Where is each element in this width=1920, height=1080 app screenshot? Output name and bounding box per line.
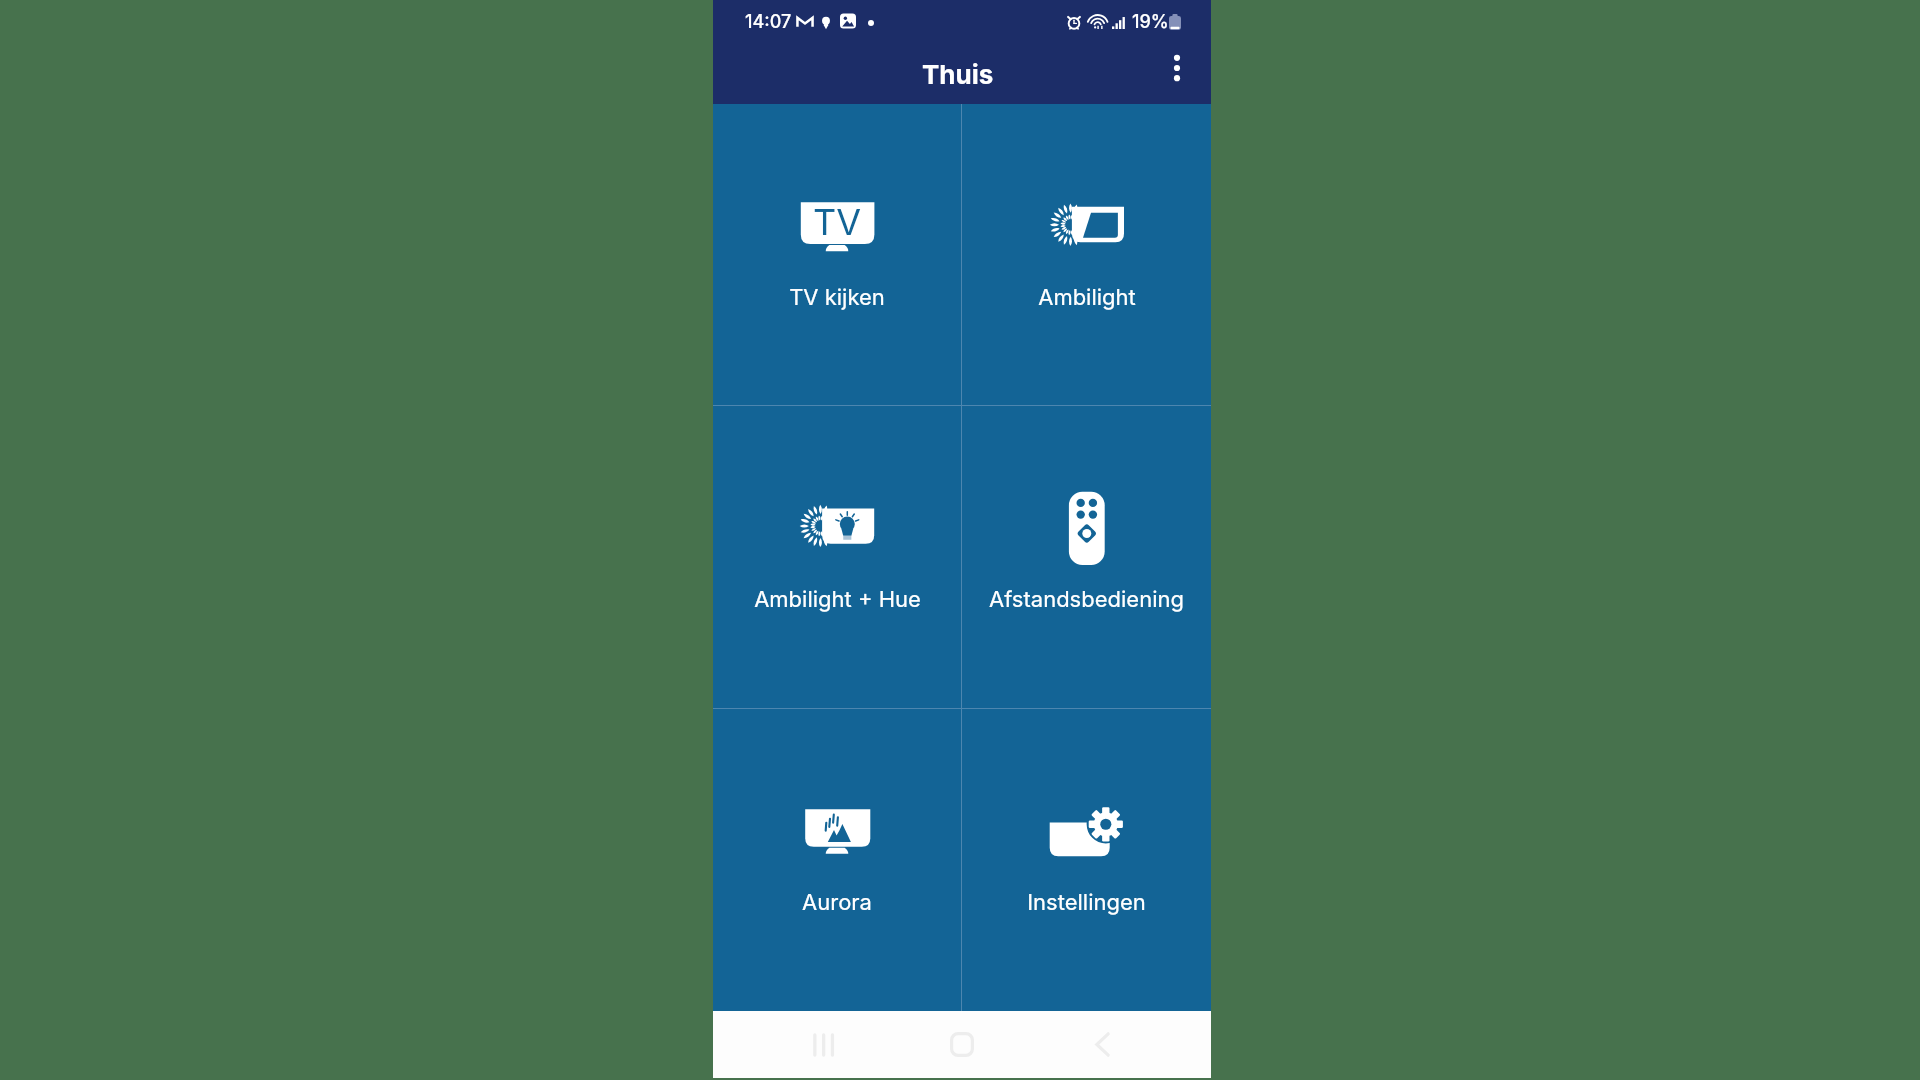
- staticText: Afstandsbediening: [989, 586, 1184, 613]
- staticText: TV kijken: [789, 284, 885, 311]
- button[interactable]: TV: [713, 104, 961, 405]
- staticText: 19%: [1132, 11, 1169, 33]
- staticText: 14:07: [745, 11, 792, 33]
- button[interactable]: Ambilight: [962, 104, 1211, 405]
- staticText: Thuis: [922, 59, 994, 90]
- button[interactable]: Ambilight + Hue: [713, 406, 961, 708]
- staticText: Instellingen: [1027, 889, 1146, 916]
- button[interactable]: More options: [1153, 44, 1201, 92]
- staticText: Ambilight + Hue: [754, 586, 921, 613]
- button[interactable]: Aurora: [713, 709, 961, 1011]
- button[interactable]: Afstandsbediening: [962, 406, 1211, 708]
- button[interactable]: Instellingen: [962, 709, 1211, 1011]
- staticText: Ambilight: [1038, 284, 1136, 311]
- staticText: Aurora: [802, 889, 872, 916]
- staticText: TV: [813, 200, 862, 244]
